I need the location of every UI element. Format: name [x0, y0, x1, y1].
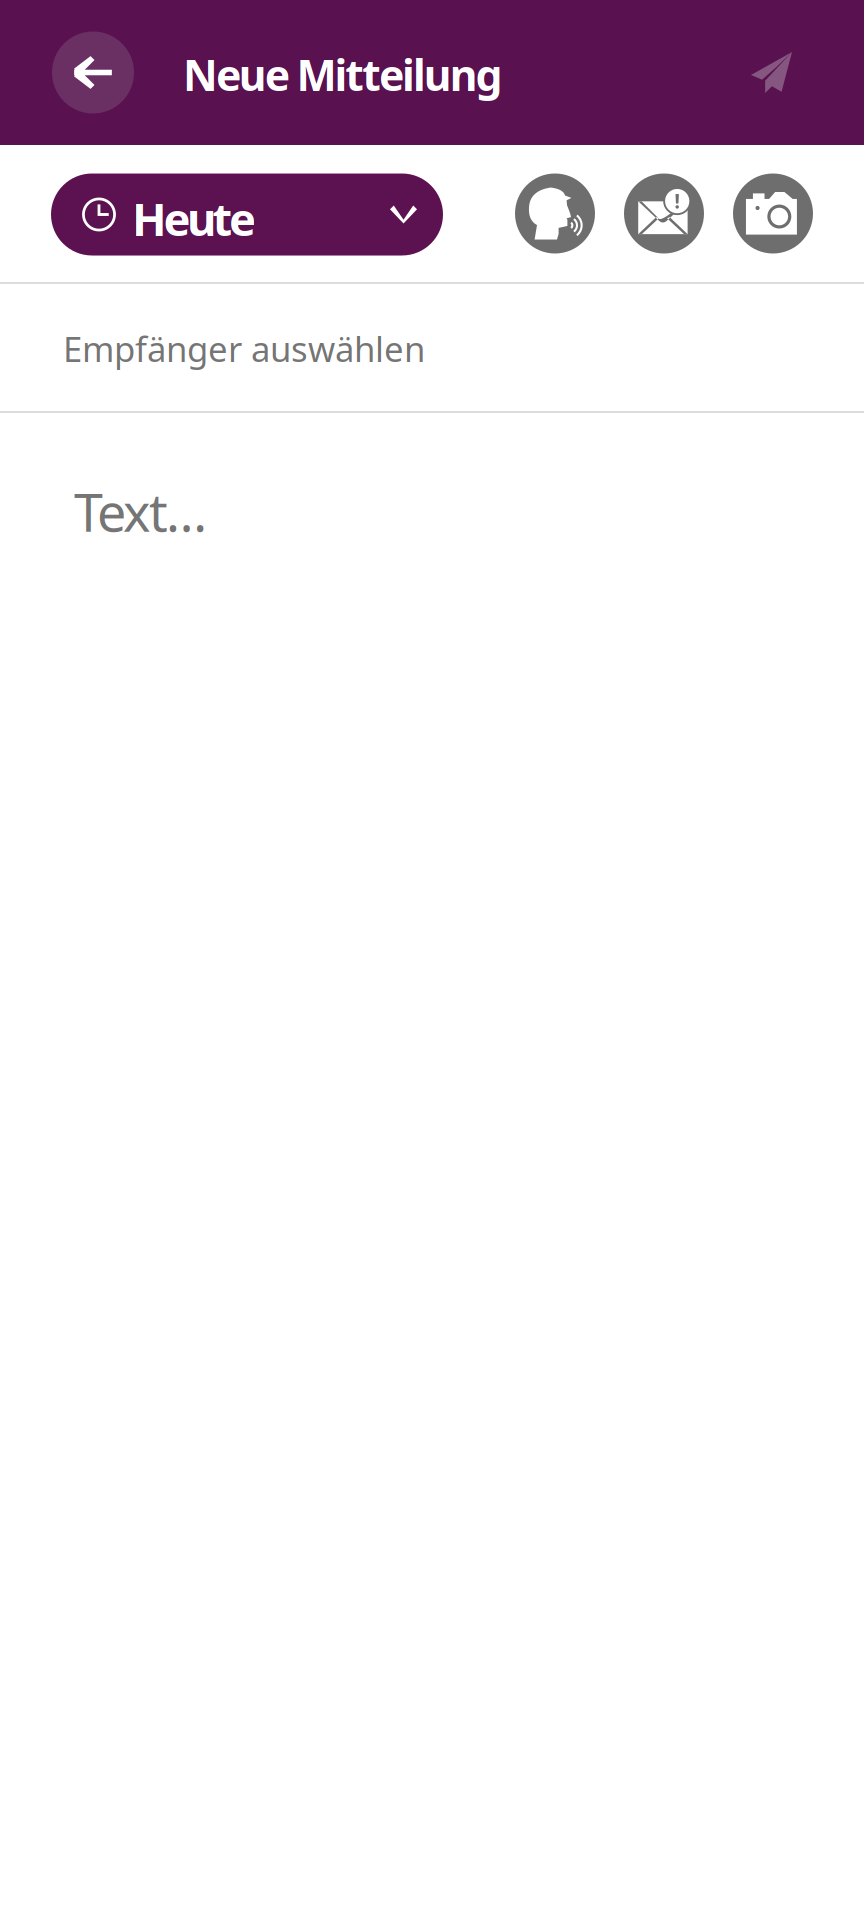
button[interactable]: Wichtig markieren	[624, 173, 704, 253]
staticText: Neue Mitteilung	[183, 46, 503, 103]
button[interactable]: Text…	[0, 413, 864, 1920]
button[interactable]: Heute	[51, 173, 443, 255]
button[interactable]: Foto aufnehmen	[733, 173, 813, 253]
button[interactable]: Vorlesen	[515, 173, 595, 253]
staticText: Heute	[132, 188, 256, 249]
button[interactable]: Empfänger auswählen	[0, 284, 864, 411]
staticText: Text…	[74, 477, 207, 546]
staticText: Empfänger auswählen	[63, 325, 425, 371]
button[interactable]: Zurück	[52, 31, 134, 113]
button[interactable]: Senden	[733, 34, 810, 111]
